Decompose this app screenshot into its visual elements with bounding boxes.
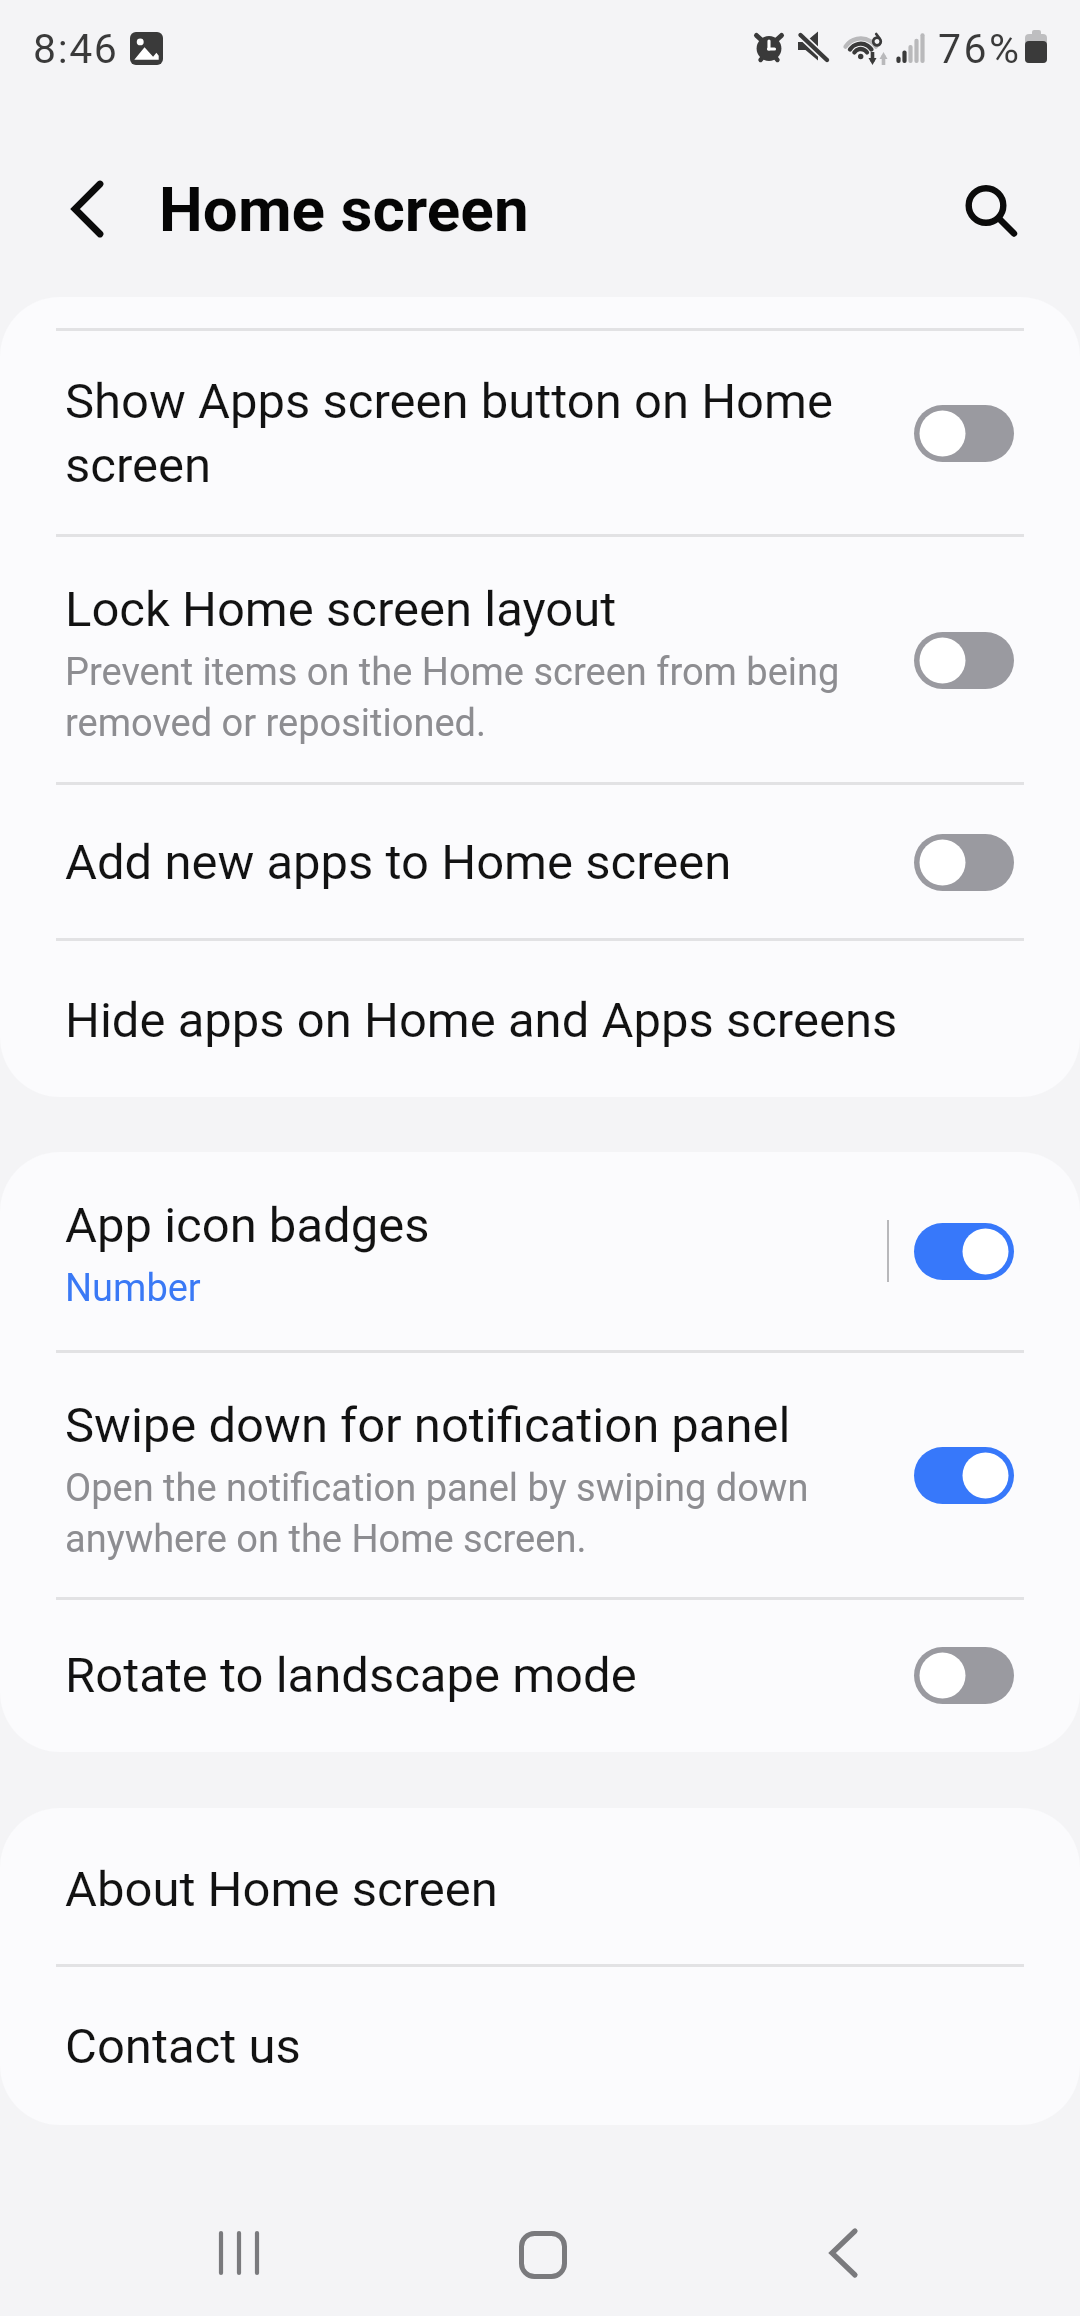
staticText: Prevent items on the Home screen from be… bbox=[65, 650, 892, 745]
button[interactable]: Home bbox=[471, 2183, 611, 2316]
button[interactable]: Hide apps on Home and Apps screens bbox=[0, 940, 1080, 1097]
staticText: Swipe down for notification panel bbox=[65, 1397, 791, 1454]
button[interactable]: About Home screen bbox=[0, 1808, 1080, 1966]
staticText: App icon badges bbox=[65, 1197, 430, 1254]
button[interactable]: Back bbox=[782, 2183, 922, 2316]
staticText: About Home screen bbox=[65, 1861, 498, 1918]
button[interactable]: Switch off bbox=[914, 834, 1014, 891]
button[interactable]: Switch on bbox=[914, 1223, 1014, 1280]
staticText: Lock Home screen layout bbox=[65, 581, 617, 638]
button[interactable]: Switch off bbox=[914, 1647, 1014, 1704]
button[interactable]: Rotate to landscape mode bbox=[0, 1599, 1080, 1752]
button[interactable]: Lock Home screen layout bbox=[0, 536, 1080, 784]
button[interactable]: Show Apps screen button on Home screen bbox=[0, 330, 1080, 536]
staticText: Hide apps on Home and Apps screens bbox=[65, 992, 898, 1049]
button[interactable]: Recent apps bbox=[169, 2183, 309, 2316]
staticText: Number bbox=[65, 1266, 201, 1311]
button[interactable]: Swipe down for notification panel bbox=[0, 1352, 1080, 1599]
staticText: Open the notification panel by swiping d… bbox=[65, 1466, 892, 1561]
button[interactable]: Navigate up bbox=[27, 149, 147, 269]
button[interactable]: App icon badges bbox=[0, 1152, 1080, 1350]
staticText: Contact us bbox=[65, 2018, 301, 2075]
staticText: Add new apps to Home screen bbox=[65, 834, 732, 891]
staticText: Rotate to landscape mode bbox=[65, 1647, 637, 1704]
button[interactable]: Switch off bbox=[914, 405, 1014, 462]
button[interactable]: Contact us bbox=[0, 1966, 1080, 2123]
staticText: Home screen bbox=[159, 173, 529, 246]
button[interactable]: Add new apps to Home screen bbox=[0, 784, 1080, 940]
staticText: Show Apps screen button on Home screen bbox=[65, 373, 892, 494]
button[interactable]: Switch on bbox=[914, 1447, 1014, 1504]
button[interactable]: Search bbox=[926, 145, 1046, 265]
button[interactable]: Switch off bbox=[914, 632, 1014, 689]
staticText: 76% bbox=[938, 25, 1022, 73]
staticText: 8:46 bbox=[33, 25, 119, 73]
